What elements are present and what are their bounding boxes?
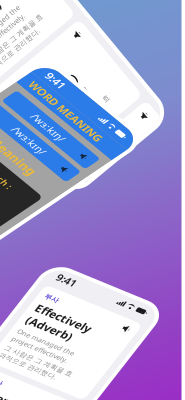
staticText: Effectively (Adverb) — [22, 65, 112, 111]
staticText: Effectively (Adverb) — [22, 65, 112, 111]
staticText: 그 사람은 그 계획을 효과적으로 관리했다. — [22, 147, 133, 175]
staticText: 9:41 — [18, 8, 49, 30]
staticText: Operation; action. — [24, 261, 123, 277]
staticText: Diligent (Adjective) — [22, 221, 114, 267]
staticText: /ˈwɜːkɪŋ/ — [58, 106, 116, 125]
staticText: Parts of Speech : noun — [24, 180, 131, 215]
staticText: 그 사람은 그 계획을 효과적으로 관리했다. — [22, 303, 133, 330]
staticText: 동사 — [22, 359, 44, 373]
staticText: 부사 — [22, 48, 44, 61]
staticText: Synonyms — [24, 309, 91, 326]
staticText: - — [24, 333, 28, 349]
staticText: 9:41 — [18, 8, 49, 30]
staticText: Meaning — [51, 137, 133, 162]
staticText: 부사 — [22, 48, 44, 61]
staticText: One managed the project effectively. — [22, 271, 115, 299]
staticText: WORD MEANING — [15, 35, 148, 56]
staticText: One managed the project effectively. — [22, 115, 115, 143]
staticText: Definitions (usually in the plural) — [24, 222, 143, 254]
staticText: 그 사람은 그 계획을 효과적으로 관리했다. — [22, 147, 133, 175]
staticText: 그 사람은 그 계획을 효과적으로 관리했다. — [22, 303, 133, 330]
staticText: /ˈwɜːkɪŋ/ — [58, 72, 116, 91]
staticText: 동사 — [22, 359, 44, 373]
staticText: 형용사 — [22, 204, 55, 217]
staticText: Diligent (Adjective) — [22, 221, 114, 267]
staticText: 9:41 — [18, 8, 49, 30]
staticText: 형용사 — [22, 204, 55, 217]
staticText: Antonyms — [24, 356, 91, 374]
staticText: One managed the project effectively. — [22, 271, 115, 299]
staticText: Accomplish (Verb) — [22, 377, 121, 400]
staticText: Example — [24, 284, 79, 302]
staticText: Accomplish (Verb) — [22, 377, 121, 400]
staticText: One managed the project effectively. — [22, 115, 115, 143]
